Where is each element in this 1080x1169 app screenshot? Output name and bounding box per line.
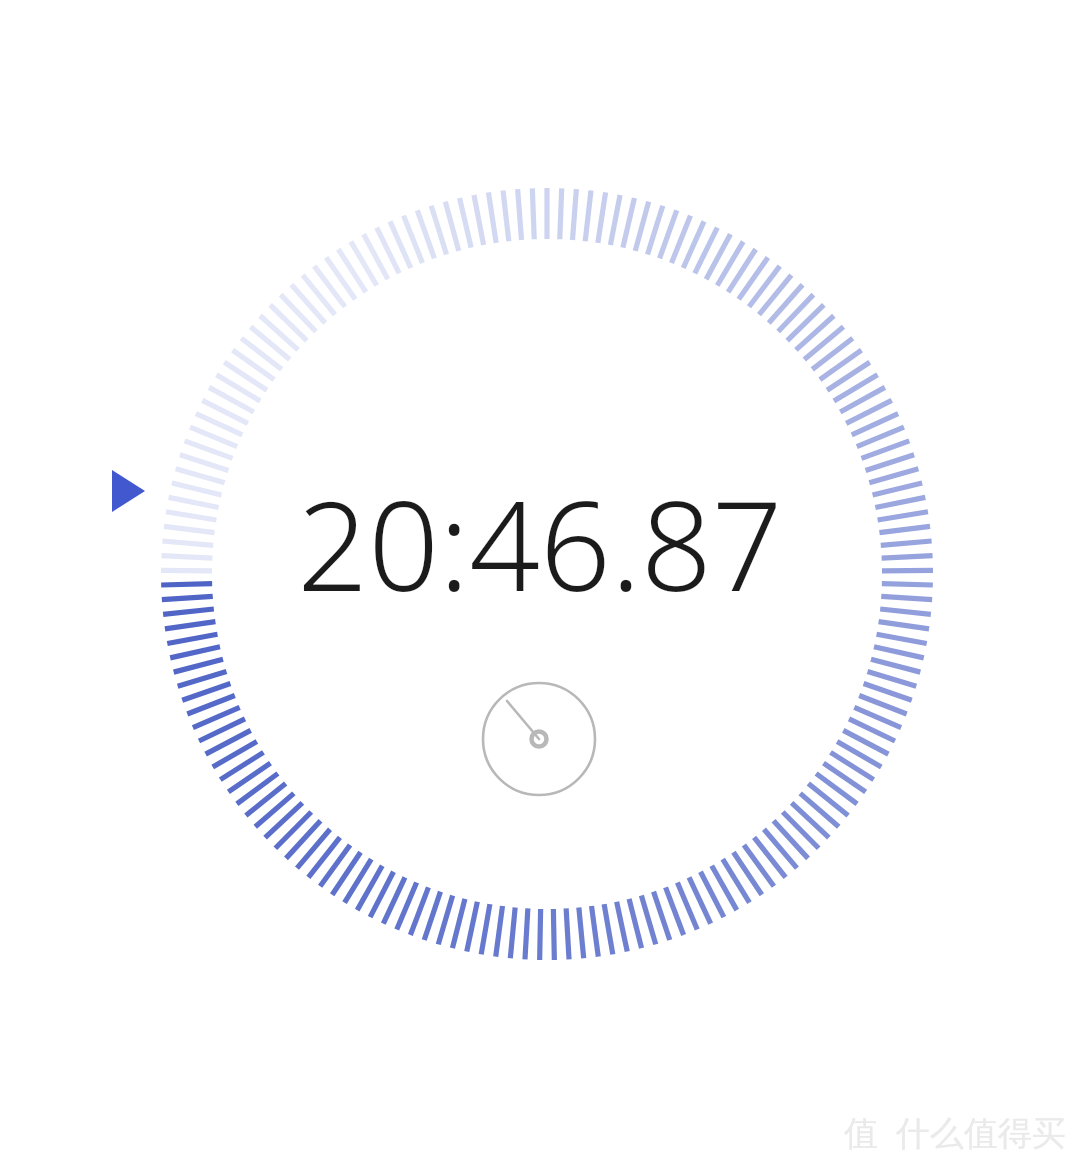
- staticText: 值 什么值得买: [844, 1109, 1066, 1155]
- staticText: 20:46.87: [0, 458, 1080, 627]
- button[interactable]: Stopwatch dial: [0, 0, 1080, 1169]
